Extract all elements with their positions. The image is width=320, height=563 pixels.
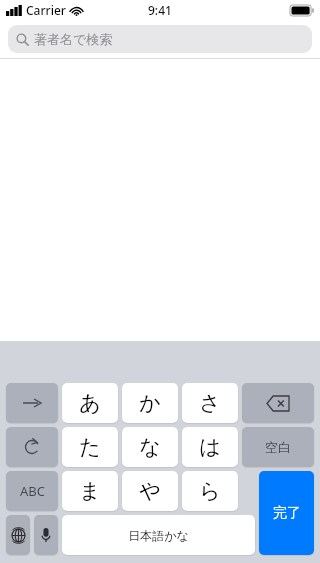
button[interactable]: ま <box>62 471 118 511</box>
staticText: 空白 <box>265 439 291 455</box>
button[interactable]: 完了 <box>259 471 314 555</box>
staticText: あ <box>79 390 101 416</box>
button[interactable]: や <box>122 471 178 511</box>
button[interactable]: あ <box>62 383 118 423</box>
button[interactable]: な <box>122 427 178 467</box>
button[interactable]: Next candidate <box>6 383 58 423</box>
button[interactable]: た <box>62 427 118 467</box>
button[interactable]: 日本語かな <box>62 515 255 555</box>
staticText: ABC <box>20 482 45 500</box>
staticText: や <box>139 478 161 504</box>
button[interactable]: Delete <box>242 383 314 423</box>
button[interactable]: 著者名で検索 <box>8 25 312 53</box>
staticText: ら <box>199 478 221 504</box>
staticText: 日本語かな <box>128 528 189 543</box>
staticText: ま <box>79 478 101 504</box>
button[interactable]: は <box>182 427 238 467</box>
staticText: Carrier <box>26 2 66 18</box>
button[interactable]: ABC <box>6 471 58 511</box>
button[interactable]: ら <box>182 471 238 511</box>
staticText: 完了 <box>273 504 301 522</box>
button[interactable]: Undo <box>6 427 58 467</box>
button[interactable]: Dictation <box>34 515 58 555</box>
staticText: さ <box>199 390 221 416</box>
staticText: は <box>199 434 221 460</box>
button[interactable]: か <box>122 383 178 423</box>
staticText: 9:41 <box>148 2 172 18</box>
button[interactable]: さ <box>182 383 238 423</box>
button[interactable]: Change keyboard <box>6 515 30 555</box>
staticText: な <box>139 434 161 460</box>
button[interactable]: 空白 <box>242 427 314 467</box>
staticText: 著者名で検索 <box>34 31 113 47</box>
staticText: た <box>79 434 101 460</box>
staticText: か <box>139 390 161 416</box>
